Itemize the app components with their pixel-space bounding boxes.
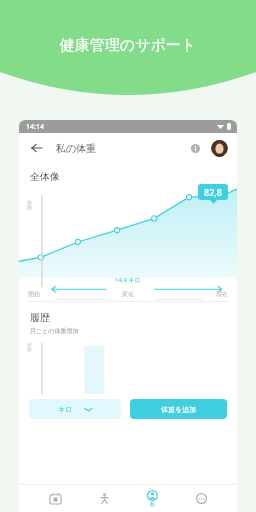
- staticText: 月ごとの体重増加: [30, 327, 79, 335]
- staticText: 私の体重: [56, 142, 97, 155]
- staticText: 分 量: [27, 341, 32, 353]
- button[interactable]: その他: [188, 485, 214, 511]
- staticText: 14,9 キロ: [115, 276, 141, 284]
- staticText: 私: [150, 501, 155, 507]
- staticText: 82,8: [204, 186, 222, 198]
- staticText: 体 重: [27, 199, 32, 211]
- staticText: 変化: [122, 290, 134, 298]
- staticText: 体重を追加: [161, 405, 197, 414]
- button[interactable]: 日記: [42, 485, 68, 511]
- button[interactable]: 情報: [186, 139, 204, 157]
- staticText: 全体像: [30, 170, 60, 183]
- staticText: 現在: [216, 290, 228, 298]
- staticText: 健康管理のサポート: [0, 36, 256, 55]
- staticText: 開始: [28, 290, 40, 298]
- button[interactable]: プロフィール: [211, 140, 228, 157]
- button[interactable]: 運動: [91, 485, 117, 511]
- staticText: キロ: [58, 405, 73, 414]
- staticText: 14:14: [26, 122, 44, 132]
- button[interactable]: 戻る: [28, 139, 46, 157]
- button[interactable]: キロ: [29, 399, 121, 419]
- staticText: 履歴: [30, 311, 50, 324]
- button[interactable]: 私: [139, 485, 165, 511]
- button[interactable]: 体重を追加: [130, 399, 227, 419]
